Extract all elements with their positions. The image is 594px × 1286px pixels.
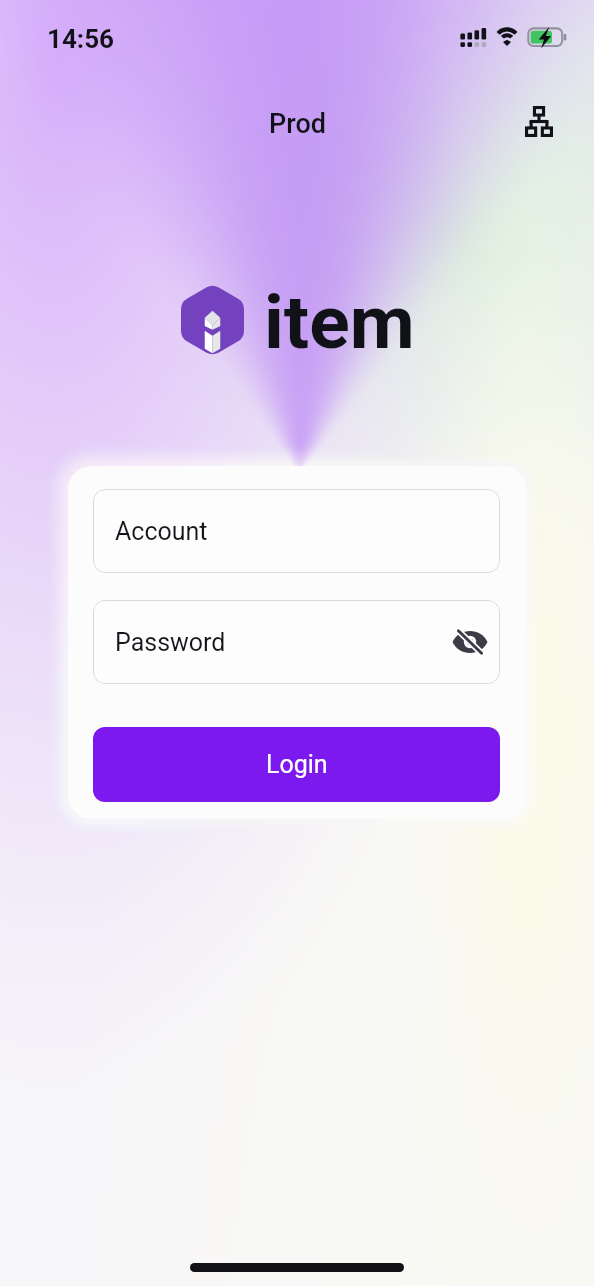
staticText: 14:56 bbox=[47, 24, 114, 54]
button[interactable]: Show password bbox=[442, 614, 498, 670]
staticText: Password bbox=[115, 628, 226, 657]
staticText: Account bbox=[115, 517, 208, 546]
button[interactable]: Account bbox=[93, 489, 500, 573]
button[interactable]: Environment bbox=[513, 95, 565, 147]
staticText: Prod bbox=[269, 108, 326, 140]
staticText: Login bbox=[266, 750, 328, 779]
staticText: item bbox=[264, 278, 415, 366]
button[interactable]: Password bbox=[93, 600, 500, 684]
button[interactable]: Login bbox=[93, 727, 500, 802]
